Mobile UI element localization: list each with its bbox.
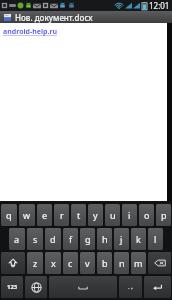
button[interactable]: e [37, 204, 52, 226]
button[interactable]: Space [49, 276, 117, 298]
button[interactable]: w [19, 204, 35, 226]
staticText: o [144, 209, 150, 221]
staticText: u [110, 209, 116, 221]
staticText: g [85, 233, 91, 245]
button[interactable]: b [97, 252, 112, 274]
button[interactable]: Нов. документ.docx [0, 11, 172, 23]
button[interactable]: p [156, 204, 171, 226]
button[interactable]: t [71, 204, 86, 226]
button[interactable]: j [114, 228, 129, 250]
button[interactable]: x [45, 252, 61, 274]
staticText: r [60, 209, 64, 221]
button[interactable]: r [54, 204, 69, 226]
button[interactable]: f [63, 228, 78, 250]
staticText: x [51, 257, 56, 269]
button[interactable]: q [1, 204, 17, 226]
staticText: f [69, 233, 73, 245]
button[interactable]: i [122, 204, 137, 226]
staticText: n [119, 257, 125, 269]
button[interactable]: l [148, 228, 163, 250]
staticText: h [102, 233, 108, 245]
button[interactable]: c [63, 252, 78, 274]
staticText: s [33, 233, 38, 245]
staticText: i [128, 209, 131, 221]
button[interactable]: v [80, 252, 95, 274]
staticText: w [23, 209, 31, 221]
button[interactable]: a [9, 228, 25, 250]
staticText: v [85, 257, 90, 269]
staticText: y [93, 209, 98, 221]
button[interactable]: Comma and period [119, 276, 142, 298]
button[interactable]: s [27, 228, 43, 250]
button[interactable]: d [45, 228, 61, 250]
button[interactable]: z [27, 252, 43, 274]
staticText: m [134, 257, 143, 269]
button[interactable]: Change keyboard language [25, 276, 47, 298]
button[interactable]: Backspace [148, 252, 171, 274]
staticText: c [68, 257, 73, 269]
staticText: z [33, 257, 38, 269]
staticText: . , [128, 283, 133, 291]
staticText: p [161, 209, 167, 221]
button[interactable]: o [139, 204, 154, 226]
button[interactable]: Enter [144, 276, 171, 298]
staticText: t [77, 209, 81, 221]
staticText: a [14, 233, 20, 245]
button[interactable]: k [131, 228, 146, 250]
staticText: 123 [7, 283, 18, 291]
staticText: 12:01 [149, 0, 170, 11]
staticText: Нов. документ.docx [15, 12, 93, 23]
staticText: e [42, 209, 48, 221]
button[interactable]: m [131, 252, 146, 274]
button[interactable]: android-help.ru [3, 27, 58, 37]
staticText: l [154, 233, 157, 245]
button[interactable]: Shift [1, 252, 25, 274]
button[interactable]: Numbers and symbols [1, 276, 23, 298]
staticText: d [50, 233, 56, 245]
button[interactable]: g [80, 228, 95, 250]
staticText: j [120, 233, 123, 245]
button[interactable]: u [105, 204, 120, 226]
button[interactable]: h [97, 228, 112, 250]
button[interactable]: y [88, 204, 103, 226]
staticText: b [102, 257, 108, 269]
button[interactable]: n [114, 252, 129, 274]
staticText: q [6, 209, 12, 221]
staticText: k [136, 233, 141, 245]
